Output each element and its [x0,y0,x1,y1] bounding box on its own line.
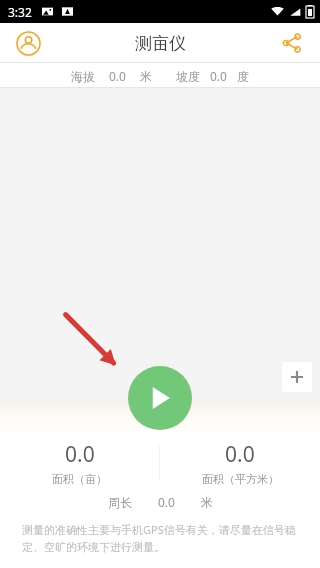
staticText: 0.0 [158,494,175,510]
button[interactable]: Profile [8,23,48,63]
button[interactable]: 0.0 [160,434,320,492]
staticText: 面积（平方米） [202,472,279,486]
staticText: 米 [201,495,213,510]
staticText: 海拔 [71,69,95,84]
staticText: 面积（亩） [52,472,107,486]
staticText: 度 [237,69,249,84]
button[interactable]: Share [272,23,312,63]
staticText: 0.0 [109,68,126,84]
button[interactable]: Zoom in [282,362,312,392]
staticText: 3:32 [8,4,32,20]
staticText: 测亩仪 [135,33,186,54]
staticText: 周长 [108,495,132,510]
staticText: 坡度 [176,69,200,84]
button[interactable]: Start measuring [128,366,192,430]
staticText: 测量的准确性主要与手机GPS信号有关，请尽量在信号稳定、空旷的环境下进行测量。 [22,522,298,554]
staticText: 0.0 [65,440,95,469]
staticText: 0.0 [225,440,255,469]
button[interactable]: 0.0 [0,434,159,492]
staticText: 米 [140,69,152,84]
staticText: 0.0 [210,68,227,84]
